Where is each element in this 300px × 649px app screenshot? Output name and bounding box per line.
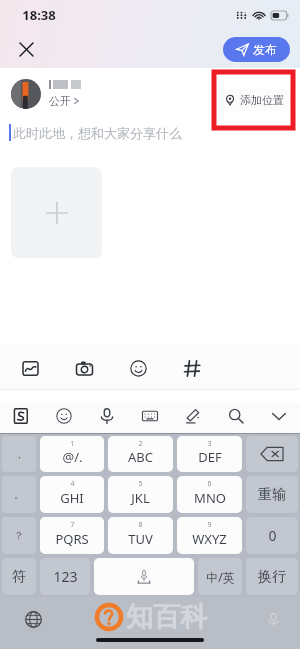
- button[interactable]: Close: [11, 34, 41, 64]
- button[interactable]: 6: [177, 476, 242, 513]
- button[interactable]: Topic: [179, 355, 205, 381]
- staticText: 9: [207, 520, 212, 530]
- button[interactable]: 8: [108, 517, 173, 554]
- staticText: DEF: [198, 448, 222, 466]
- button[interactable]: Emoji: [125, 355, 151, 381]
- staticText: 知百科: [126, 600, 207, 634]
- staticText: 符: [12, 568, 26, 586]
- staticText: 18:38: [22, 6, 56, 24]
- staticText: ？: [14, 529, 24, 542]
- staticText: JKL: [131, 489, 150, 507]
- button[interactable]: Delete: [246, 436, 298, 472]
- button[interactable]: Camera: [71, 355, 97, 381]
- staticText: ABC: [128, 448, 153, 466]
- staticText: 添加位置: [240, 93, 284, 107]
- staticText: 0: [268, 526, 277, 545]
- staticText: 8: [138, 520, 143, 530]
- button[interactable]: Emoji: [51, 403, 77, 429]
- staticText: WXYZ: [192, 530, 227, 548]
- button[interactable]: Space: [94, 558, 194, 595]
- button[interactable]: 换行: [246, 558, 298, 595]
- staticText: 123: [53, 567, 78, 586]
- button[interactable]: 3: [177, 436, 242, 472]
- button[interactable]: Hide keyboard: [266, 403, 292, 429]
- button[interactable]: 中/英: [198, 558, 242, 595]
- staticText: 中/英: [206, 569, 235, 585]
- button[interactable]: Search: [223, 403, 249, 429]
- staticText: 6: [207, 479, 212, 489]
- staticText: 3: [207, 439, 212, 449]
- button[interactable]: Switch language: [21, 607, 45, 631]
- staticText: 1: [70, 439, 75, 449]
- staticText: 7: [70, 520, 75, 530]
- button[interactable]: 公开: [49, 94, 79, 108]
- staticText: ，: [14, 448, 24, 461]
- staticText: @/.: [62, 448, 83, 466]
- button[interactable]: 2: [108, 436, 173, 472]
- button[interactable]: 9: [177, 517, 242, 554]
- staticText: 换行: [258, 568, 286, 586]
- staticText: 2: [138, 439, 143, 449]
- staticText: 5: [138, 479, 143, 489]
- button[interactable]: 7: [40, 517, 104, 554]
- button[interactable]: ？: [2, 517, 36, 554]
- button[interactable]: 发布: [223, 37, 290, 62]
- staticText: 公开: [49, 94, 71, 108]
- button[interactable]: Sogou input: [8, 403, 34, 429]
- button[interactable]: 5: [108, 476, 173, 513]
- staticText: GHI: [60, 489, 84, 507]
- staticText: 此时此地，想和大家分享什么: [13, 125, 182, 141]
- staticText: MNO: [194, 489, 226, 507]
- button[interactable]: 0: [246, 517, 298, 554]
- button[interactable]: Voice input: [94, 403, 120, 429]
- button[interactable]: Gallery: [17, 355, 43, 381]
- button[interactable]: 1: [40, 436, 104, 472]
- staticText: 4: [70, 479, 75, 489]
- button[interactable]: Keyboard layout: [137, 403, 163, 429]
- staticText: TUV: [128, 530, 153, 548]
- staticText: 发布: [253, 42, 277, 57]
- button[interactable]: Handwriting: [180, 403, 206, 429]
- button[interactable]: 符: [2, 558, 36, 595]
- button[interactable]: 重输: [246, 476, 298, 513]
- staticText: PQRS: [55, 530, 89, 548]
- staticText: 。: [14, 488, 24, 501]
- button[interactable]: 4: [40, 476, 104, 513]
- button[interactable]: Profile picture: [11, 79, 41, 109]
- button[interactable]: Add location: [214, 72, 293, 128]
- button[interactable]: 123: [40, 558, 90, 595]
- staticText: 重输: [258, 486, 286, 504]
- button[interactable]: Add photo: [11, 167, 102, 258]
